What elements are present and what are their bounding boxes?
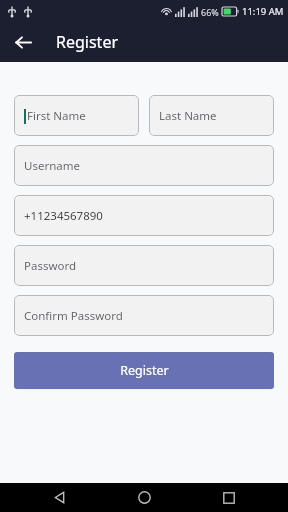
staticText: 66% <box>201 6 219 18</box>
button[interactable]: First Name <box>14 95 139 136</box>
staticText: 11:19 AM <box>242 5 284 18</box>
button[interactable]: Register <box>14 352 274 389</box>
button[interactable]: Back <box>6 25 40 59</box>
button[interactable]: Last Name <box>149 95 274 136</box>
staticText: Register <box>56 31 119 53</box>
button[interactable]: Recent apps <box>214 483 244 512</box>
button[interactable]: Home <box>129 483 159 512</box>
staticText: Confirm Password <box>24 308 123 324</box>
staticText: Register <box>120 362 169 379</box>
staticText: Last Name <box>159 108 217 124</box>
button[interactable]: Confirm Password <box>14 295 274 336</box>
staticText: Username <box>24 158 80 174</box>
button[interactable]: +11234567890 <box>14 195 274 236</box>
button[interactable]: Password <box>14 245 274 286</box>
button[interactable]: Back <box>44 483 74 512</box>
staticText: Password <box>24 258 77 274</box>
staticText: First Name <box>27 108 86 124</box>
button[interactable]: Username <box>14 145 274 186</box>
staticText: +11234567890 <box>24 208 103 224</box>
